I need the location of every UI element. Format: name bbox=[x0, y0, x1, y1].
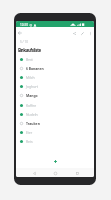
staticText: Kaffee bbox=[26, 103, 37, 108]
staticText: Reis bbox=[26, 139, 33, 144]
button[interactable]: Back bbox=[16, 29, 24, 37]
button[interactable]: Milch bbox=[16, 73, 94, 82]
staticText: Mango bbox=[26, 93, 38, 98]
button[interactable]: Mango bbox=[16, 91, 94, 100]
staticText: 5 / 10 bbox=[20, 40, 29, 44]
staticText: Joghurt bbox=[26, 84, 38, 89]
button[interactable]: Recent apps bbox=[73, 169, 81, 177]
staticText: Brot bbox=[26, 57, 33, 62]
button[interactable]: Reis bbox=[16, 137, 94, 146]
button[interactable]: Brot bbox=[16, 55, 94, 64]
staticText: 12:30 ◎ ▲ bbox=[20, 23, 37, 27]
button[interactable]: 6 Bananen bbox=[16, 64, 94, 73]
button[interactable]: Trauben bbox=[16, 119, 94, 128]
button[interactable]: Add item bbox=[50, 156, 60, 166]
staticText: Nudeln bbox=[26, 112, 38, 117]
button[interactable]: Home bbox=[51, 169, 59, 177]
button[interactable]: Kaffee bbox=[16, 101, 94, 110]
button[interactable]: Back bbox=[30, 169, 38, 177]
button[interactable]: More options bbox=[86, 29, 94, 37]
staticText: Einkaufsliste bbox=[18, 47, 41, 53]
button[interactable]: Nudeln bbox=[16, 110, 94, 119]
staticText: Milch bbox=[26, 75, 35, 80]
button[interactable]: Share list bbox=[70, 29, 78, 37]
button[interactable]: Edit list bbox=[78, 29, 86, 37]
button[interactable]: Eier bbox=[16, 128, 94, 137]
staticText: Trauben bbox=[26, 121, 40, 126]
staticText: Eier bbox=[26, 130, 33, 135]
button[interactable]: Joghurt bbox=[16, 82, 94, 91]
staticText: 6 Bananen bbox=[26, 66, 44, 71]
